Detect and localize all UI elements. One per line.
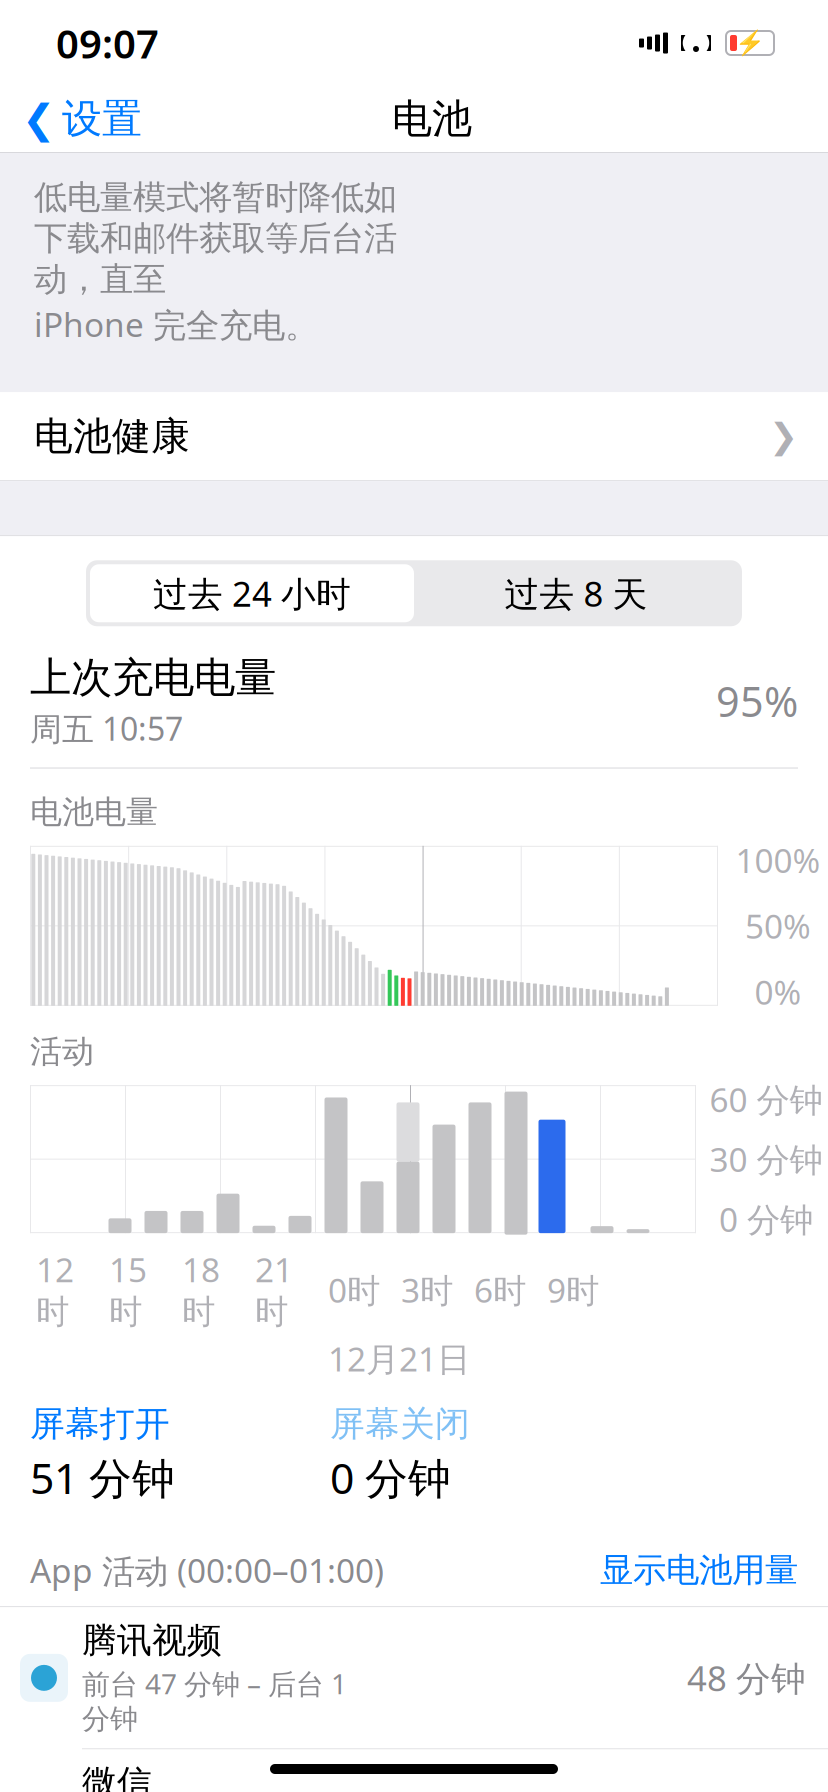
staticText: 周五 10:57 [30, 707, 183, 749]
button[interactable]: 过去 8 天 [414, 564, 738, 622]
staticText: 9时 [547, 1268, 599, 1312]
staticText: iPhone 完全充电。 [34, 302, 318, 346]
staticText: 电池电量 [30, 792, 158, 832]
staticText: 12时 [36, 1247, 74, 1332]
staticText: 18时 [182, 1247, 220, 1332]
staticText: 6时 [474, 1268, 526, 1312]
staticText: ⚡ [735, 29, 765, 57]
staticText: 95% [716, 673, 798, 728]
staticText: 前台 47 分钟 – 后台 1 分钟 [82, 1665, 347, 1736]
button[interactable]: 显示电池用量 [600, 1550, 798, 1590]
staticText: 3时 [401, 1268, 453, 1312]
staticText: 显示电池用量 [600, 1550, 798, 1590]
staticText: 48 分钟 [687, 1655, 806, 1701]
staticText: ❮ [22, 96, 56, 142]
button[interactable]: 电池健康 [0, 392, 828, 480]
staticText: 50% [745, 904, 811, 948]
staticText: 60 分钟 [709, 1077, 822, 1121]
staticText: 微信 [82, 1761, 152, 1792]
button[interactable]: 腾讯视频 [0, 1607, 828, 1749]
staticText: 腾讯视频 [82, 1619, 222, 1662]
button[interactable]: 微信 [0, 1749, 828, 1792]
staticText: 0时 [328, 1268, 380, 1312]
staticText: 屏幕关闭 [330, 1403, 470, 1445]
staticText: 0% [754, 970, 801, 1014]
staticText: 15时 [109, 1247, 147, 1332]
staticText: 低电量模式将暂时降低如下载和邮件获取等后台活动，直至 [34, 177, 397, 300]
staticText: 上次充电电量 [30, 652, 276, 703]
staticText: 设置 [62, 94, 142, 143]
staticText: 12月21日 [328, 1336, 470, 1381]
staticText: ❯ [769, 417, 798, 456]
staticText: App 活动 (00:00–01:00) [30, 1548, 384, 1592]
staticText: 0 分钟 [719, 1197, 813, 1241]
staticText: 过去 24 小时 [153, 570, 351, 616]
button[interactable]: 过去 24 小时 [90, 564, 414, 622]
staticText: 电池健康 [34, 412, 190, 460]
staticText: 0 分钟 [330, 1449, 451, 1506]
staticText: 30 分钟 [709, 1137, 822, 1181]
staticText: 09:07 [56, 16, 159, 69]
staticText: 电池 [392, 94, 472, 143]
staticText: 活动 [30, 1032, 94, 1071]
staticText: 51 分钟 [30, 1449, 175, 1506]
staticText: 屏幕打开 [30, 1403, 170, 1445]
button[interactable]: ❮ [0, 86, 152, 151]
staticText: 100% [735, 838, 820, 882]
staticText: 21时 [255, 1247, 293, 1332]
staticText: 过去 8 天 [504, 570, 647, 616]
